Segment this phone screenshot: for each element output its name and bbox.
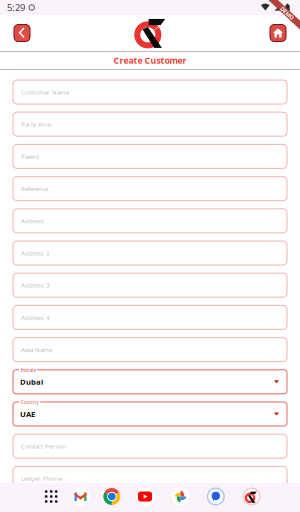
staticText: Address 4 <box>21 313 50 322</box>
staticText: Address 3 <box>21 281 50 289</box>
staticText: Emirate <box>21 367 36 373</box>
staticText: Parent <box>21 152 39 161</box>
button[interactable]: Back <box>14 24 30 41</box>
staticText: Address 2 <box>21 249 50 257</box>
staticText: Create Customer <box>113 55 186 66</box>
button[interactable]: Home <box>270 24 286 41</box>
staticText: DEMO <box>279 9 295 17</box>
staticText: Ledger Phone <box>21 474 62 483</box>
staticText: Contact Person <box>21 442 66 450</box>
button[interactable]: Party Alias <box>13 112 287 136</box>
staticText: Dubai <box>20 376 43 387</box>
staticText: UAE <box>20 409 35 419</box>
button[interactable]: Address <box>13 209 287 233</box>
button[interactable]: Dubai <box>13 370 287 394</box>
button[interactable]: Company app <box>240 485 262 507</box>
button[interactable]: YouTube <box>134 485 156 507</box>
staticText: Reference <box>21 184 48 193</box>
button[interactable]: Address 2 <box>13 241 287 265</box>
button[interactable]: Address 3 <box>13 273 287 297</box>
button[interactable]: Contact Person <box>13 434 287 458</box>
staticText: Address <box>21 217 44 225</box>
staticText: Customer Name <box>21 88 69 96</box>
button[interactable]: All apps <box>40 485 62 507</box>
button[interactable]: Reference <box>13 177 287 201</box>
button[interactable]: Gmail <box>69 485 91 507</box>
button[interactable]: Address 4 <box>13 305 287 329</box>
button[interactable]: UAE <box>13 402 287 426</box>
staticText: 5:29 <box>7 1 25 14</box>
staticText: Area Name <box>21 345 52 354</box>
button[interactable]: Ledger Phone <box>13 466 287 490</box>
button[interactable]: Chrome <box>101 485 123 507</box>
button[interactable]: Photos <box>169 485 191 507</box>
button[interactable]: Area Name <box>13 338 287 362</box>
button[interactable]: Parent <box>13 144 287 168</box>
button[interactable]: Customer Name <box>13 80 287 104</box>
button[interactable]: Messages <box>205 485 227 507</box>
staticText: Party Alias <box>21 120 52 128</box>
staticText: Country <box>21 399 39 405</box>
